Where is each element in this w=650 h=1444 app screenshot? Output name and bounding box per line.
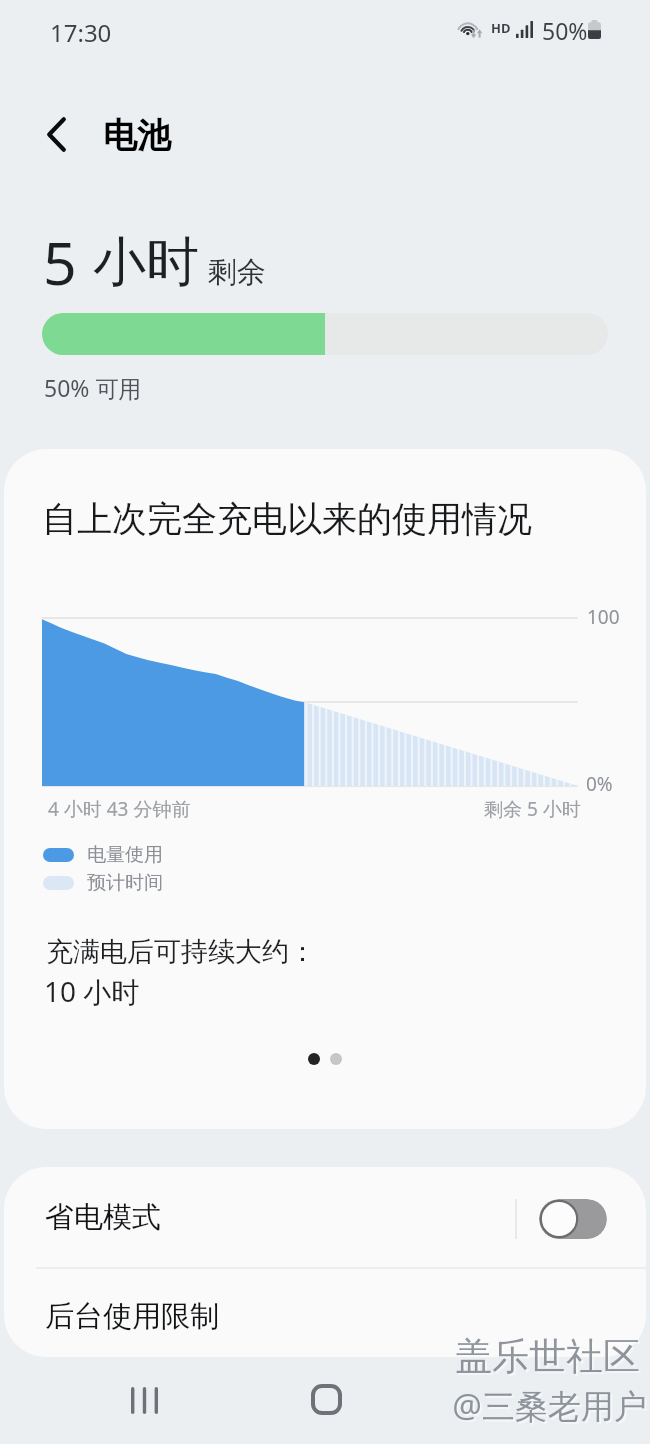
staticText: 省电模式 bbox=[45, 1199, 161, 1236]
staticText: 17:30 bbox=[50, 16, 112, 49]
staticText: 0% bbox=[586, 771, 613, 797]
staticText: @三桑老用户 bbox=[452, 1383, 647, 1428]
staticText: 盖乐世社区 bbox=[455, 1333, 640, 1380]
staticText: 预计时间 bbox=[87, 871, 163, 895]
staticText: 电量使用 bbox=[87, 843, 163, 867]
staticText: 充满电后可持续大约： bbox=[46, 935, 316, 969]
staticText: 10 小时 bbox=[44, 972, 140, 1010]
staticText: 剩余 5 小时 bbox=[484, 796, 581, 822]
staticText: 后台使用限制 bbox=[45, 1298, 219, 1335]
button[interactable]: Back bbox=[476, 1372, 536, 1428]
staticText: 4 小时 43 分钟前 bbox=[48, 796, 191, 822]
staticText: 5 bbox=[43, 222, 77, 302]
button[interactable]: Power saving mode toggle bbox=[539, 1199, 607, 1239]
staticText: HD bbox=[491, 19, 511, 37]
staticText: @三桑老用户 bbox=[454, 1385, 649, 1430]
staticText: 盖乐世社区 bbox=[457, 1335, 642, 1382]
button[interactable]: 省电模式 bbox=[4, 1167, 646, 1267]
staticText: 100 bbox=[587, 604, 620, 630]
button[interactable]: Back bbox=[23, 103, 89, 165]
staticText: 50% bbox=[542, 15, 588, 46]
staticText: 50% 可用 bbox=[44, 372, 142, 403]
staticText: 小时 bbox=[93, 229, 199, 296]
staticText: 电池 bbox=[103, 114, 171, 157]
button[interactable]: Home bbox=[296, 1371, 356, 1427]
staticText: 自上次完全充电以来的使用情况 bbox=[42, 497, 532, 541]
button[interactable]: Recents bbox=[114, 1372, 174, 1428]
staticText: 剩余 bbox=[208, 254, 266, 291]
button[interactable]: 后台使用限制 bbox=[4, 1276, 646, 1357]
